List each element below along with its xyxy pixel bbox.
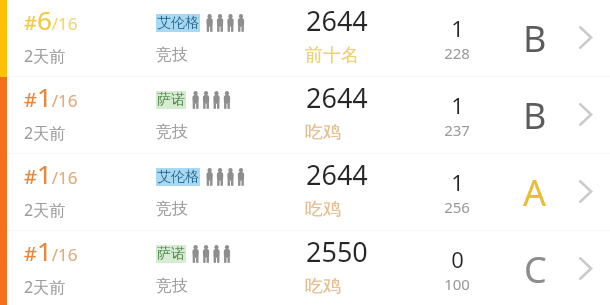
staticText: 228 <box>444 43 470 63</box>
staticText: B <box>523 91 547 135</box>
staticText: A <box>523 168 547 212</box>
staticText: 吃鸡 <box>305 275 341 298</box>
button[interactable]: View match details <box>575 177 599 205</box>
staticText: 萨诺 <box>157 245 185 263</box>
staticText: 艾伦格 <box>157 168 199 186</box>
staticText: 2644 <box>306 79 368 116</box>
staticText: 2天前 <box>24 122 66 144</box>
staticText: 竞技 <box>156 199 188 219</box>
button[interactable]: #1/16 <box>0 154 610 230</box>
button[interactable]: View match details <box>575 254 599 282</box>
staticText: 1 <box>451 13 464 43</box>
staticText: #1/16 <box>24 156 78 191</box>
staticText: 2644 <box>306 2 368 39</box>
staticText: 吃鸡 <box>305 198 341 221</box>
staticText: 竞技 <box>156 276 188 296</box>
staticText: 256 <box>444 197 470 217</box>
staticText: #1/16 <box>24 233 78 268</box>
button[interactable]: View match details <box>575 23 599 51</box>
staticText: 1 <box>451 90 464 120</box>
staticText: B <box>523 14 547 58</box>
staticText: 2644 <box>306 156 368 193</box>
staticText: 2天前 <box>24 199 66 221</box>
staticText: 1 <box>451 167 464 197</box>
staticText: 竞技 <box>156 122 188 142</box>
staticText: 艾伦格 <box>157 14 199 32</box>
staticText: 2天前 <box>24 45 66 67</box>
staticText: 竞技 <box>156 45 188 65</box>
staticText: 萨诺 <box>157 91 185 109</box>
staticText: C <box>524 245 547 289</box>
staticText: 前十名 <box>305 44 359 67</box>
staticText: #1/16 <box>24 79 78 114</box>
button[interactable]: #1/16 <box>0 77 610 153</box>
button[interactable]: View match details <box>575 100 599 128</box>
staticText: #6/16 <box>24 2 78 37</box>
staticText: 100 <box>444 274 470 294</box>
staticText: 吃鸡 <box>305 121 341 144</box>
staticText: 2天前 <box>24 276 66 298</box>
staticText: 2550 <box>306 233 368 270</box>
staticText: 237 <box>444 120 470 140</box>
button[interactable]: #6/16 <box>0 0 610 76</box>
staticText: 0 <box>451 244 464 274</box>
button[interactable]: #1/16 <box>0 231 610 305</box>
